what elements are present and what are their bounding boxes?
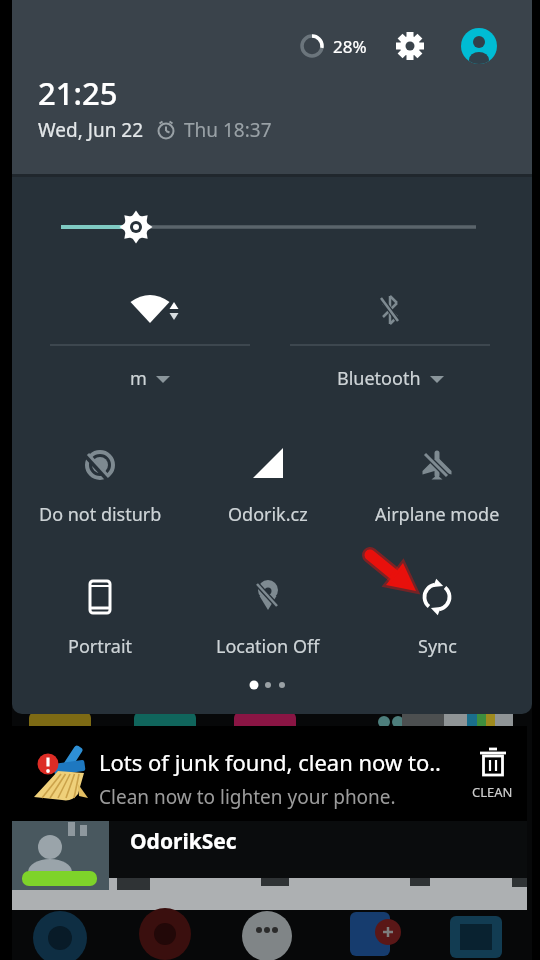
button[interactable]: Location Off	[158, 632, 378, 660]
button[interactable]	[299, 33, 325, 59]
staticText: Thu 18:37	[184, 117, 272, 143]
button[interactable]: Airplane mode	[327, 500, 532, 528]
staticText: Bluetooth	[337, 366, 421, 391]
staticText: m	[130, 366, 147, 391]
button[interactable]: Portrait	[12, 632, 210, 660]
button[interactable]: Odorik.cz	[158, 500, 378, 528]
button[interactable]	[461, 28, 497, 64]
staticText: 21:25	[38, 72, 118, 114]
button[interactable]: CLEAN	[472, 747, 513, 801]
staticText: Portrait	[68, 634, 133, 659]
staticText: Location Off	[216, 634, 320, 659]
staticText: OdorikSec	[130, 827, 237, 856]
staticText: Wed, Jun 22	[38, 117, 144, 143]
button[interactable]	[395, 31, 425, 61]
staticText: Do not disturb	[39, 502, 162, 527]
staticText: CLEAN	[472, 783, 513, 801]
staticText: 28%	[333, 35, 367, 58]
button[interactable]: Lots of junk found, clean now to..	[12, 726, 527, 821]
button[interactable]: Sync	[327, 632, 532, 660]
staticText: Lots of junk found, clean now to..	[99, 747, 442, 777]
staticText: Airplane mode	[375, 502, 500, 527]
staticText: Sync	[418, 634, 457, 659]
staticText: Odorik.cz	[228, 502, 308, 527]
button[interactable]: m	[40, 364, 260, 392]
button[interactable]: OdorikSec	[12, 821, 527, 878]
button[interactable]: Bluetooth	[280, 364, 500, 392]
staticText: Clean now to lighten your phone.	[99, 784, 396, 810]
button[interactable]: Do not disturb	[12, 500, 210, 528]
